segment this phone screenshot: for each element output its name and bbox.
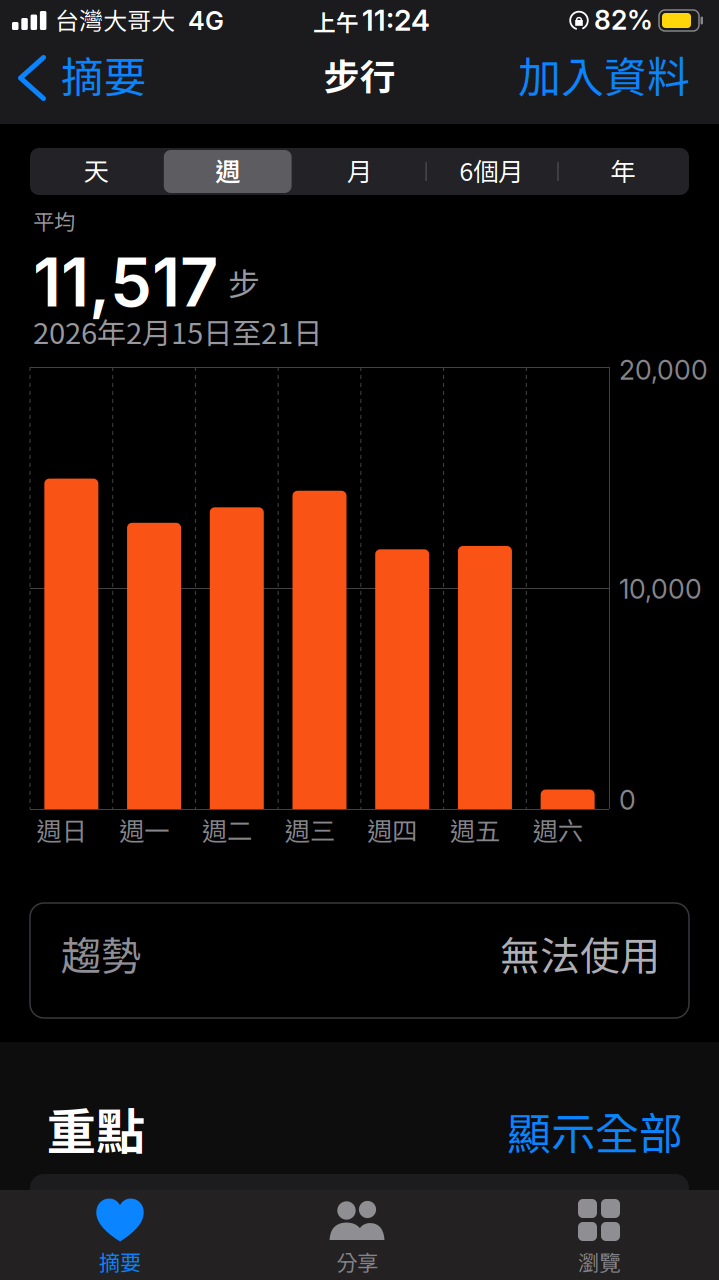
staticText: 11,517 (33, 242, 218, 323)
button[interactable]: 分享 (277, 1199, 437, 1277)
button[interactable]: 摘要 (15, 43, 147, 108)
staticText: 週 (215, 152, 240, 188)
button[interactable]: 天 (30, 148, 162, 195)
staticText: 20,000 (619, 354, 708, 386)
staticText: 週一 (119, 811, 169, 848)
staticText: 瀏覽 (578, 1246, 620, 1277)
staticText: 週四 (367, 811, 417, 848)
staticText: 趨勢 (61, 924, 141, 982)
staticText: 摘要 (99, 1246, 141, 1277)
staticText: 0 (619, 784, 636, 816)
staticText: 摘要 (61, 43, 147, 105)
staticText: 週日 (36, 811, 86, 848)
staticText: 天 (83, 152, 108, 188)
button[interactable]: 加入資料 (518, 44, 690, 105)
staticText: 無法使用 (500, 924, 660, 982)
staticText: 年 (611, 152, 636, 188)
staticText: 4G (188, 5, 224, 36)
staticText: 步行 (323, 49, 395, 101)
staticText: 分享 (336, 1246, 378, 1277)
button[interactable]: 6個月 (425, 148, 557, 195)
button[interactable]: 顯示全部 (507, 1099, 683, 1163)
staticText: 6個月 (459, 152, 523, 188)
staticText: 82% (594, 4, 653, 36)
staticText: 顯示全部 (507, 1099, 683, 1163)
staticText: 週六 (533, 811, 583, 848)
staticText: 重點 (47, 1092, 145, 1164)
button[interactable]: 摘要 (40, 1199, 200, 1277)
staticText: 上午 (313, 5, 359, 38)
staticText: 週五 (450, 811, 500, 848)
staticText: 週三 (285, 811, 335, 848)
button[interactable]: 月 (294, 148, 425, 195)
button[interactable]: 瀏覽 (519, 1199, 679, 1277)
button[interactable]: 年 (557, 148, 689, 195)
staticText: 加入資料 (518, 44, 690, 105)
button[interactable]: 週 (162, 148, 294, 195)
staticText: 10,000 (619, 573, 702, 605)
button[interactable]: 趨勢 (30, 903, 689, 1018)
staticText: 11:24 (362, 3, 430, 38)
staticText: 台灣大哥大 (55, 2, 175, 37)
staticText: 步 (228, 259, 260, 305)
staticText: 2026年2月15日至21日 (33, 310, 322, 352)
staticText: 月 (347, 152, 372, 188)
staticText: 平均 (33, 205, 75, 236)
staticText: 週二 (202, 811, 252, 848)
